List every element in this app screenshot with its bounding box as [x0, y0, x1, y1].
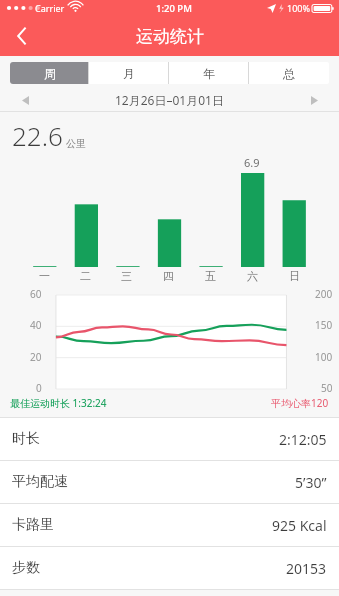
button[interactable]: 平均配速: [0, 461, 339, 503]
staticText: 时长: [12, 430, 40, 448]
staticText: 月: [123, 66, 135, 81]
staticText: 最佳运动时长 1:32:24: [10, 396, 107, 410]
staticText: 50: [321, 381, 333, 395]
staticText: 925 Kcal: [272, 516, 327, 535]
staticText: 60: [30, 287, 42, 301]
staticText: 40: [30, 318, 42, 332]
staticText: 6.9: [244, 155, 260, 170]
staticText: 六: [247, 269, 258, 283]
staticText: 0: [36, 381, 42, 395]
button[interactable]: 时长: [0, 418, 339, 460]
staticText: 20153: [286, 559, 327, 578]
staticText: 日: [289, 269, 300, 283]
staticText: 平均配速: [12, 473, 68, 491]
staticText: 22.6: [12, 118, 63, 153]
staticText: 2:12:05: [279, 430, 327, 449]
staticText: 5’30”: [295, 473, 327, 492]
staticText: 100%: [287, 2, 310, 14]
button[interactable]: 年: [169, 62, 249, 84]
staticText: 100: [315, 350, 333, 364]
button[interactable]: Next period: [301, 89, 327, 111]
button[interactable]: 月: [89, 62, 169, 84]
staticText: 150: [315, 318, 333, 332]
staticText: 步数: [12, 559, 40, 577]
staticText: 200: [315, 287, 333, 301]
button[interactable]: 步数: [0, 547, 339, 589]
button[interactable]: 周: [10, 62, 89, 84]
staticText: 总: [283, 66, 295, 81]
staticText: 卡路里: [12, 516, 54, 534]
button[interactable]: 卡路里: [0, 504, 339, 546]
staticText: 年: [203, 66, 215, 81]
staticText: 公里: [66, 137, 86, 150]
staticText: 平均心率120: [271, 396, 329, 410]
staticText: Carrier: [35, 2, 65, 14]
staticText: 1:20 PM: [156, 2, 192, 15]
staticText: 四: [163, 269, 174, 283]
button[interactable]: Previous period: [12, 89, 38, 111]
staticText: 三: [121, 269, 132, 283]
button[interactable]: 总: [249, 62, 329, 84]
staticText: 20: [30, 350, 42, 364]
button[interactable]: Back: [0, 16, 44, 56]
staticText: 运动统计: [136, 26, 204, 47]
staticText: 五: [205, 269, 216, 283]
staticText: 周: [44, 66, 56, 81]
staticText: 一: [39, 269, 50, 283]
staticText: 12月26日–01月01日: [115, 92, 224, 108]
staticText: 二: [80, 269, 91, 283]
